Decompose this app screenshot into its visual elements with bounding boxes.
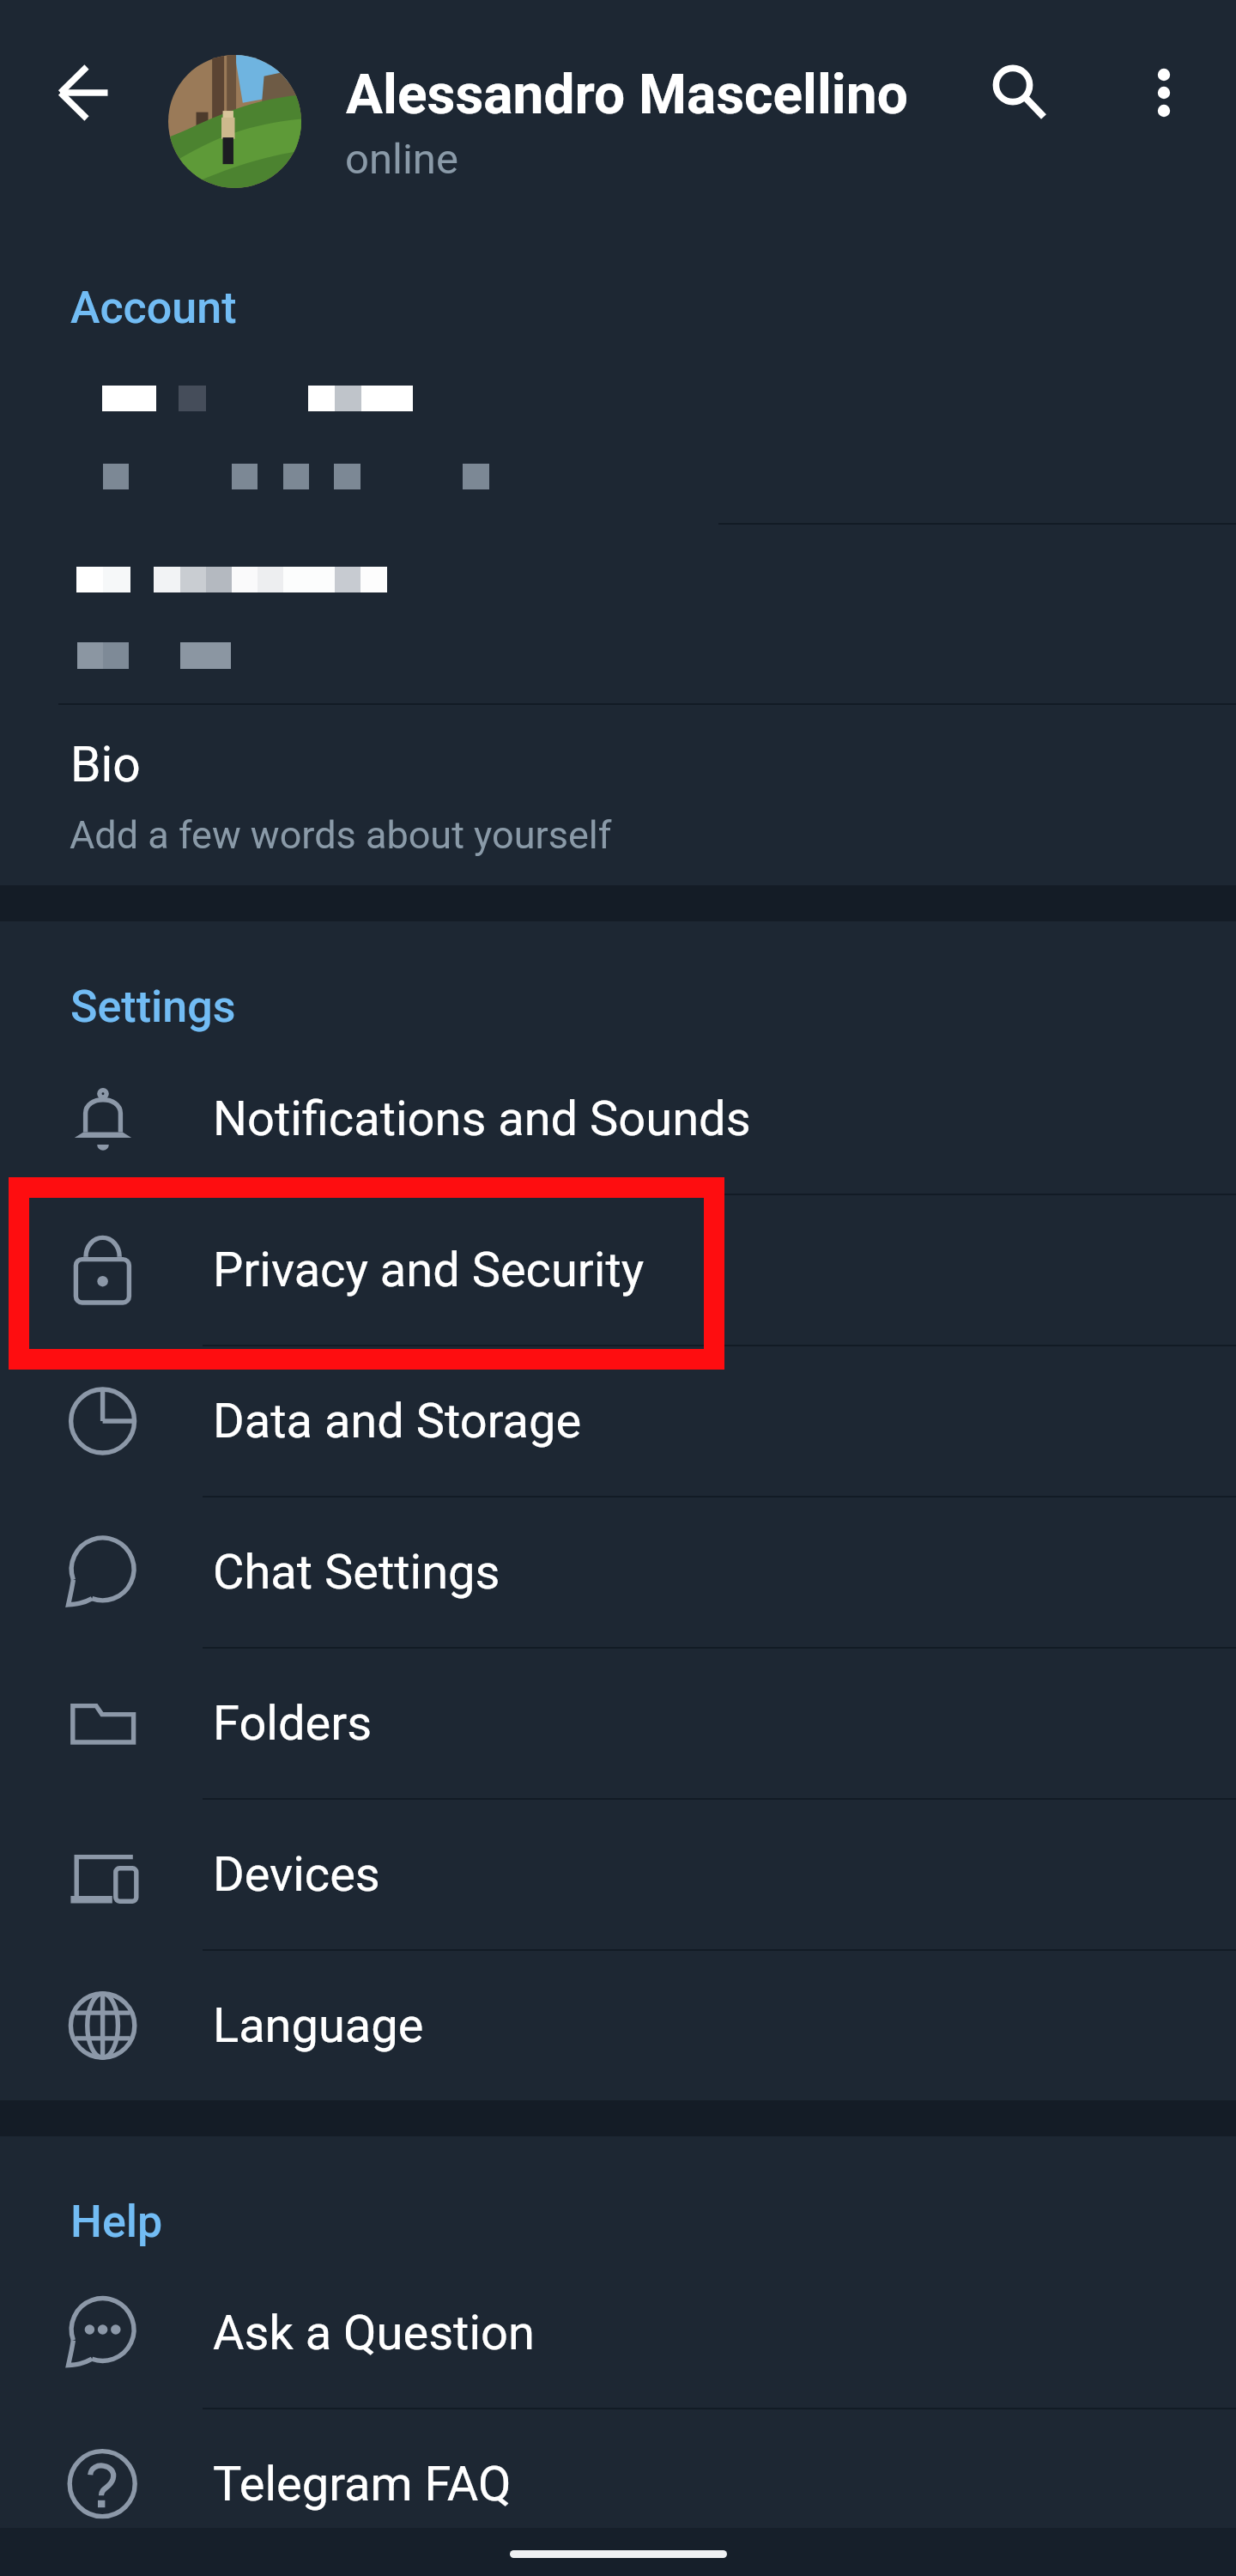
button[interactable]: Search xyxy=(963,35,1063,135)
button[interactable]: Privacy and Security xyxy=(0,1194,1236,1346)
staticText: Devices xyxy=(213,1846,380,1903)
button[interactable]: Bio xyxy=(0,706,1236,878)
button[interactable]: Devices xyxy=(0,1799,1236,1950)
staticText: Telegram FAQ xyxy=(213,2456,512,2512)
button[interactable]: Folders xyxy=(0,1648,1236,1799)
button[interactable]: Telegram FAQ xyxy=(0,2409,1236,2560)
button[interactable]: More options xyxy=(1114,43,1214,143)
button[interactable]: Chat Settings xyxy=(0,1497,1236,1648)
staticText: online xyxy=(345,135,458,184)
staticText: Folders xyxy=(213,1695,373,1752)
button[interactable]: Data and Storage xyxy=(0,1346,1236,1497)
button[interactable]: Ask a Question xyxy=(0,2257,1236,2409)
staticText: Bio xyxy=(70,736,141,793)
button[interactable]: Language xyxy=(0,1950,1236,2101)
staticText: Data and Storage xyxy=(213,1393,582,1449)
button[interactable]: Profile photo xyxy=(168,55,301,188)
staticText: Add a few words about yourself xyxy=(70,812,612,858)
staticText: Privacy and Security xyxy=(213,1242,645,1298)
staticText: Language xyxy=(213,1997,424,2054)
staticText: Help xyxy=(70,2196,163,2248)
staticText: Settings xyxy=(70,981,236,1033)
staticText: Ask a Question xyxy=(213,2305,535,2361)
staticText: Alessandro Mascellino xyxy=(346,63,908,127)
staticText: Notifications and Sounds xyxy=(213,1091,751,1147)
button[interactable]: Notifications and Sounds xyxy=(0,1043,1236,1194)
button[interactable]: Back xyxy=(34,43,134,143)
staticText: Account xyxy=(70,282,237,334)
staticText: Chat Settings xyxy=(213,1544,500,1601)
